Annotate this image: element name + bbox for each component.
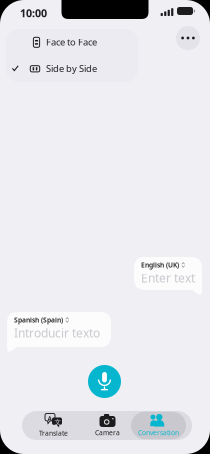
button[interactable]: Record <box>88 365 121 398</box>
staticText: 10:00 <box>20 6 47 20</box>
button[interactable]: More options <box>176 26 200 50</box>
button[interactable]: Conversation <box>131 412 186 439</box>
staticText: Spanish (Spain) <box>14 315 63 324</box>
staticText: Enter text <box>141 270 195 286</box>
button[interactable]: Spanish (Spain) <box>7 312 111 352</box>
staticText: Face to Face <box>46 36 97 48</box>
button[interactable]: Camera <box>80 412 135 439</box>
staticText: Camera <box>95 428 120 437</box>
button[interactable]: Face to Face <box>6 29 138 55</box>
button[interactable]: A <box>26 412 81 439</box>
staticText: A <box>48 414 52 423</box>
staticText: 文 <box>54 418 61 426</box>
staticText: Conversation <box>138 428 179 437</box>
staticText: English (UK) <box>141 260 179 269</box>
staticText: Translate <box>39 429 68 438</box>
staticText: Introducir texto <box>14 325 100 341</box>
button[interactable]: English (UK) <box>134 257 202 295</box>
button[interactable]: Side by Side <box>6 55 138 82</box>
staticText: Side by Side <box>46 62 97 75</box>
